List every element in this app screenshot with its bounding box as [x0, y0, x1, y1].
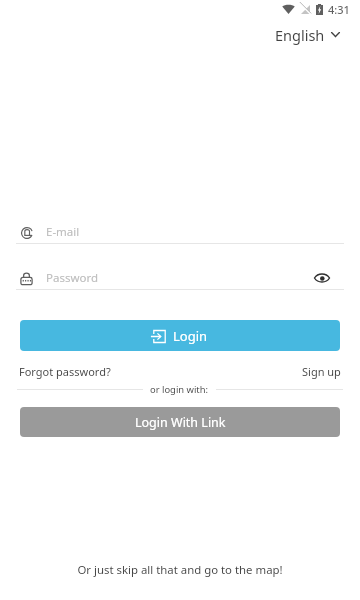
staticText: or login with: [150, 383, 209, 396]
staticText: Or just skip all that and go to the map! [77, 562, 283, 578]
button[interactable]: Sign up [302, 364, 341, 379]
button[interactable]: Or just skip all that and go to the map! [69, 558, 291, 582]
staticText: Password [46, 270, 99, 286]
button[interactable]: Forgot password? [19, 364, 111, 379]
staticText: Login With Link [135, 414, 226, 431]
button[interactable]: Login [20, 320, 340, 351]
button[interactable]: E-mail [0, 221, 360, 243]
staticText: Forgot password? [19, 364, 111, 379]
button[interactable]: Login With Link [20, 407, 340, 437]
staticText: Sign up [302, 364, 341, 379]
staticText: E-mail [46, 224, 80, 240]
button[interactable]: Show password [307, 267, 337, 289]
button[interactable]: English [275, 25, 340, 45]
staticText: English [275, 25, 325, 45]
staticText: 4:31 [328, 2, 350, 17]
staticText: Login [173, 327, 208, 345]
button[interactable]: Password [0, 267, 360, 289]
